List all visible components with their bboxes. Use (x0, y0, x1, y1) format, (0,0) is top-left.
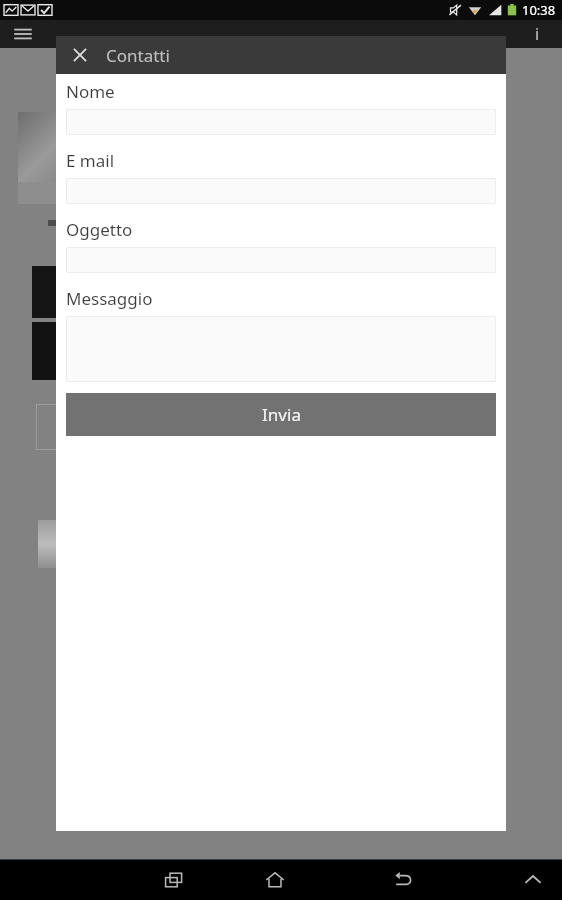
button[interactable]: Home (256, 861, 294, 899)
button[interactable]: Recent apps (155, 861, 193, 899)
staticText: 10:38 (522, 1, 556, 19)
staticText: Invia (262, 403, 301, 426)
button[interactable]: Back (384, 861, 422, 899)
staticText: i (535, 23, 540, 45)
button[interactable]: Expand (514, 861, 552, 899)
button[interactable]: Close (66, 41, 94, 69)
button[interactable]: Menu (8, 20, 38, 48)
button[interactable]: Invia (66, 393, 496, 436)
button[interactable]: Nome (66, 109, 496, 135)
staticText: Nome (66, 80, 115, 103)
button[interactable]: Info (524, 21, 550, 47)
button[interactable]: Oggetto (66, 247, 496, 273)
staticText: E mail (66, 149, 115, 172)
staticText: Oggetto (66, 218, 133, 241)
button[interactable]: E mail (66, 178, 496, 204)
staticText: Messaggio (66, 287, 153, 310)
staticText: Contatti (106, 44, 170, 67)
